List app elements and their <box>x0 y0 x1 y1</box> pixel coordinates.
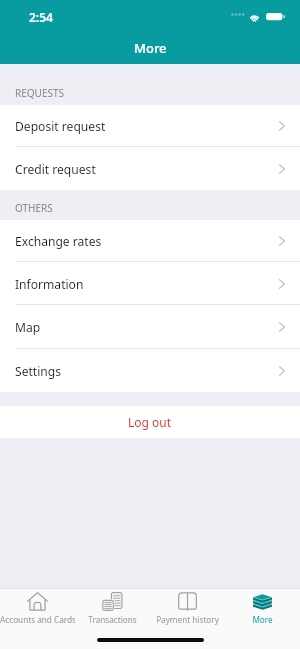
staticText: Deposit request <box>15 118 279 134</box>
staticText: Map <box>15 319 279 335</box>
button[interactable]: Information <box>0 262 300 305</box>
button[interactable]: Credit request <box>0 147 300 190</box>
button[interactable]: Accounts and Cards <box>0 592 75 625</box>
button[interactable]: Deposit request <box>0 105 300 147</box>
staticText: More <box>134 39 167 57</box>
staticText: REQUESTS <box>15 86 64 100</box>
staticText: Log out <box>128 414 172 430</box>
staticText: Accounts and Cards <box>0 614 75 625</box>
staticText: Settings <box>15 363 279 379</box>
staticText: More <box>252 614 273 625</box>
button[interactable]: Map <box>0 305 300 349</box>
button[interactable]: Exchange rates <box>0 220 300 262</box>
staticText: Transactions <box>88 614 137 625</box>
button[interactable]: Payment history <box>150 592 225 625</box>
staticText: Exchange rates <box>15 233 279 249</box>
button[interactable]: More <box>225 592 300 625</box>
staticText: 2:54 <box>29 9 53 25</box>
button[interactable]: Transactions <box>75 592 150 625</box>
staticText: Credit request <box>15 161 279 177</box>
button[interactable]: Log out <box>0 406 300 438</box>
button[interactable]: Settings <box>0 349 300 392</box>
staticText: Information <box>15 276 279 292</box>
staticText: Payment history <box>156 614 219 625</box>
staticText: OTHERS <box>15 201 53 215</box>
